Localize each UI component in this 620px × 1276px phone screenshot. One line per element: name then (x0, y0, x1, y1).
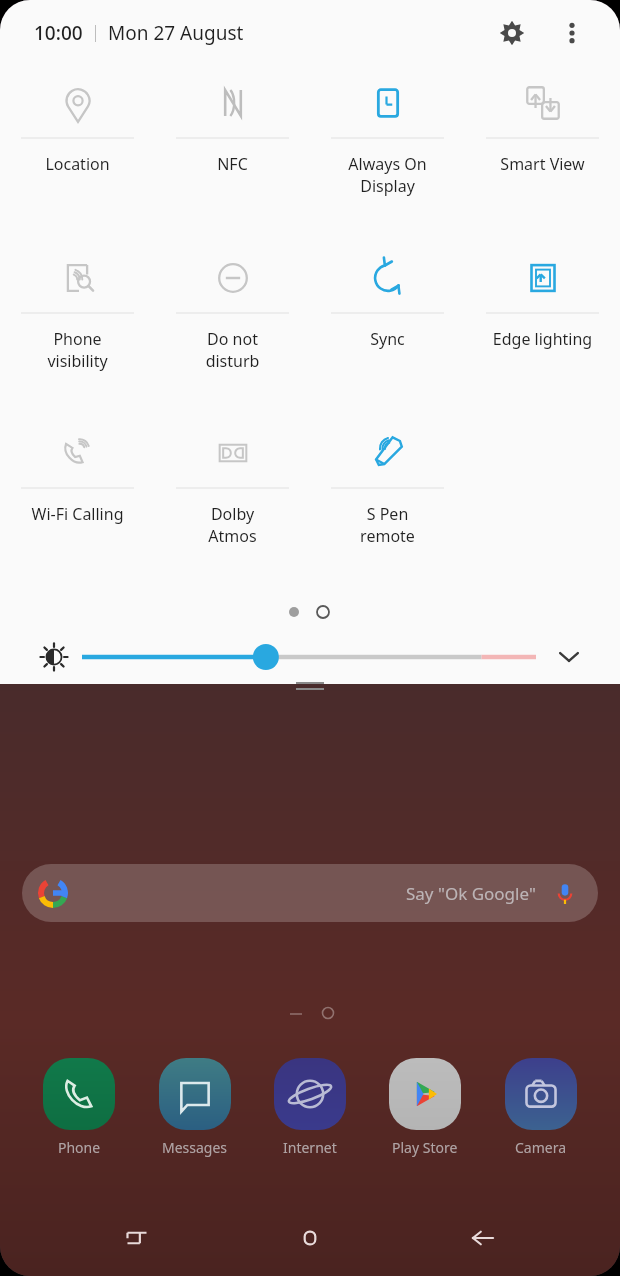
button[interactable]: Location (0, 66, 155, 241)
button[interactable]: Expand brightness settings (546, 635, 592, 679)
staticText: Wi-Fi Calling (4, 503, 151, 525)
staticText: Phone visibility (4, 328, 151, 372)
button[interactable] (274, 1058, 346, 1130)
button[interactable] (505, 1058, 577, 1130)
staticText: Do not disturb (159, 328, 306, 372)
button[interactable]: Wi-Fi Calling (0, 416, 155, 591)
button[interactable]: NFC (155, 66, 310, 241)
staticText: Location (4, 153, 151, 175)
button[interactable]: Say "Ok Google" (22, 864, 598, 922)
button[interactable]: More options (550, 11, 594, 55)
staticText: S Pen remote (314, 503, 461, 547)
staticText: Camera (515, 1138, 567, 1157)
staticText: 10:00 (34, 20, 83, 46)
staticText: Internet (283, 1138, 337, 1157)
button[interactable]: Always On Display (310, 66, 465, 241)
button[interactable] (82, 635, 536, 679)
button[interactable]: Dolby Atmos (155, 416, 310, 591)
staticText: Dolby Atmos (159, 503, 306, 547)
staticText: Smart View (469, 153, 616, 175)
button[interactable] (389, 1058, 461, 1130)
staticText: Messages (162, 1138, 228, 1157)
button[interactable]: Recents (101, 1208, 173, 1268)
button[interactable]: Back (447, 1208, 519, 1268)
staticText: Phone (58, 1138, 101, 1157)
button[interactable]: Brightness mode (32, 635, 76, 679)
button[interactable]: S Pen remote (310, 416, 465, 591)
button[interactable]: Home (274, 1208, 346, 1268)
staticText: Edge lighting (469, 328, 616, 350)
button[interactable]: Do not disturb (155, 241, 310, 416)
button[interactable]: Settings (490, 11, 534, 55)
button[interactable] (159, 1058, 231, 1130)
staticText: NFC (159, 153, 306, 175)
staticText: Sync (314, 328, 461, 350)
button[interactable]: Sync (310, 241, 465, 416)
button[interactable]: Smart View (465, 66, 620, 241)
button[interactable]: Phone visibility (0, 241, 155, 416)
button[interactable] (43, 1058, 115, 1130)
staticText: Mon 27 August (108, 20, 244, 46)
button[interactable]: Edge lighting (465, 241, 620, 416)
staticText: Always On Display (314, 153, 461, 197)
staticText: Say "Ok Google" (406, 882, 536, 905)
staticText: Play Store (392, 1138, 458, 1157)
